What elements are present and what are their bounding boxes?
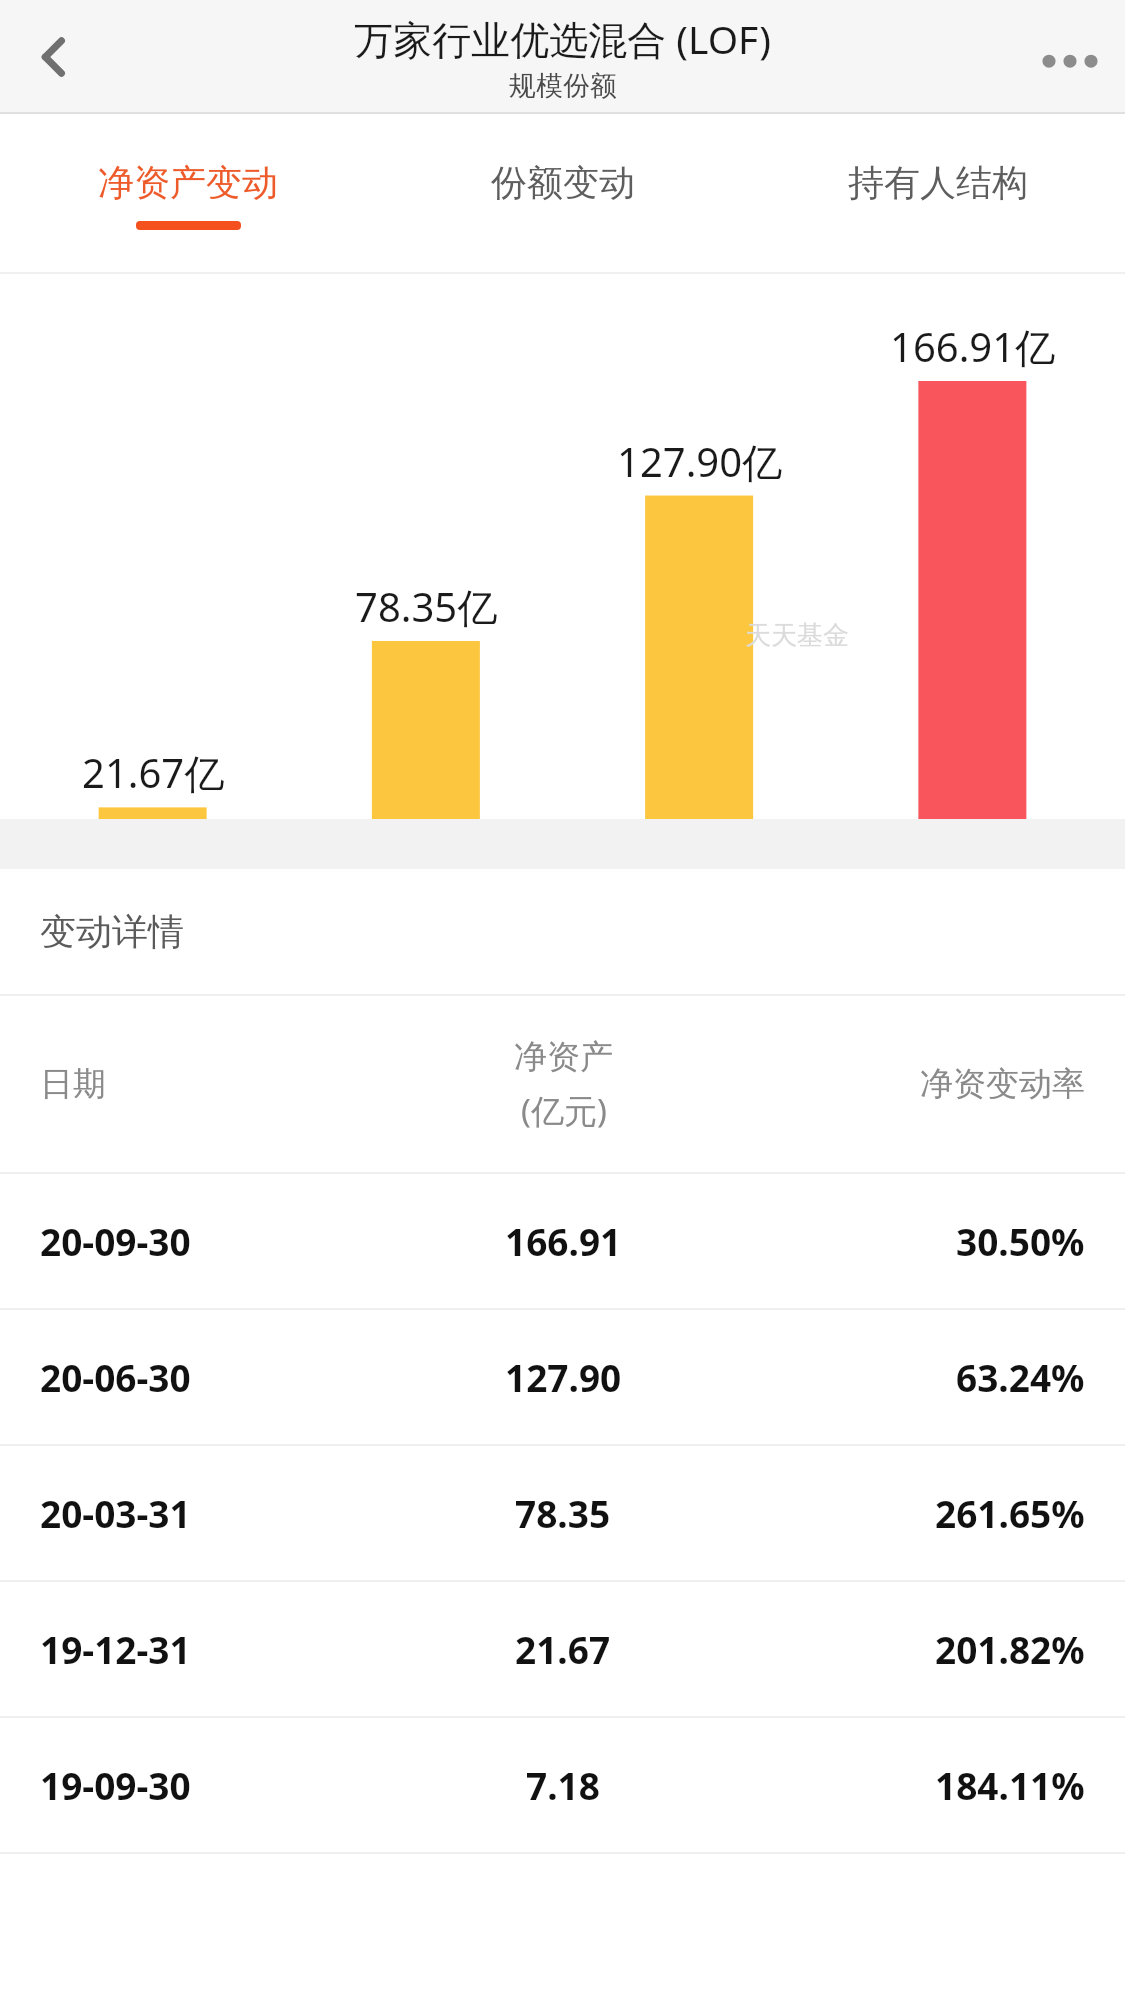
staticText: 127.90: [505, 1352, 622, 1402]
staticText: 19-09-30: [40, 1760, 191, 1810]
button[interactable]: 20-03-31: [0, 1446, 1125, 1580]
button[interactable]: 19-12-31: [0, 1582, 1125, 1716]
staticText: 127.90亿: [617, 434, 783, 489]
staticText: 天天基金: [745, 619, 849, 652]
staticText: 净资产: [514, 1036, 613, 1078]
staticText: 78.35: [515, 1488, 611, 1538]
staticText: 166.91亿: [890, 319, 1056, 374]
staticText: 净资产变动: [98, 160, 278, 205]
staticText: 184.11%: [935, 1760, 1085, 1810]
button[interactable]: Back: [0, 2, 110, 112]
staticText: 份额变动: [491, 160, 635, 205]
staticText: 21.67亿: [82, 745, 225, 800]
staticText: 净资变动率: [920, 1063, 1085, 1105]
staticText: 261.65%: [935, 1488, 1085, 1538]
staticText: 20-06-30: [40, 1352, 191, 1402]
staticText: (亿元): [521, 1088, 607, 1133]
button[interactable]: 20-09-30: [0, 1174, 1125, 1308]
staticText: 201.82%: [935, 1624, 1085, 1674]
staticText: 规模份额: [509, 69, 617, 103]
staticText: 20-09-30: [40, 1216, 191, 1266]
button[interactable]: 份额变动: [375, 114, 750, 274]
staticText: 166.91: [505, 1216, 622, 1266]
staticText: 19-12-31: [98, 897, 209, 934]
staticText: 78.35亿: [355, 579, 498, 634]
button[interactable]: 20-06-30: [0, 1310, 1125, 1444]
button[interactable]: 19-09-30: [0, 1718, 1125, 1852]
staticText: 21.67: [515, 1624, 611, 1674]
button[interactable]: 持有人结构: [750, 114, 1125, 274]
staticText: 日期: [40, 1063, 106, 1105]
button[interactable]: 净资产变动: [0, 114, 375, 274]
staticText: 万家行业优选混合 (LOF): [354, 12, 771, 65]
staticText: 63.24%: [956, 1352, 1085, 1402]
staticText: 19-12-31: [40, 1624, 191, 1674]
button[interactable]: More options: [1015, 2, 1125, 112]
staticText: 20-03-31: [40, 1488, 191, 1538]
staticText: 变动详情: [40, 909, 184, 954]
staticText: 持有人结构: [848, 160, 1028, 205]
staticText: 7.18: [526, 1760, 600, 1810]
staticText: 30.50%: [956, 1216, 1085, 1266]
